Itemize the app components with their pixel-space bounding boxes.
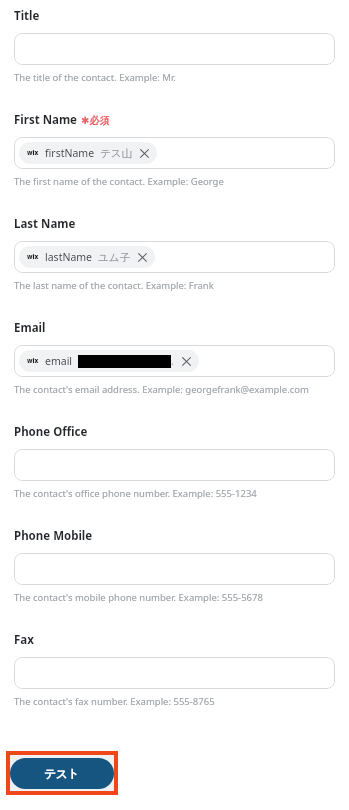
staticText: Fax [14,632,34,648]
button[interactable] [14,657,335,689]
staticText: ✱必須 [81,114,110,127]
staticText: Last Name [14,216,76,232]
staticText: . [171,354,174,368]
staticText: email [45,354,73,368]
staticText: Title [14,8,40,24]
staticText: ユム子 [98,251,130,264]
button[interactable] [14,449,335,481]
other: Remove token [181,356,192,367]
staticText: The first name of the contact. Example: … [14,175,224,188]
other: Remove token [139,148,150,159]
staticText: The contact's email address. Example: ge… [14,383,309,396]
staticText: The title of the contact. Example: Mr. [14,71,176,84]
button[interactable]: テスト [10,758,114,789]
staticText: First Name [14,112,77,128]
staticText: Phone Office [14,424,88,440]
staticText: テスト [44,767,80,781]
button[interactable]: wix [14,241,335,273]
staticText: Email [14,320,46,336]
staticText: テス山 [100,147,132,160]
staticText: The contact's office phone number. Examp… [14,487,257,500]
button[interactable]: wix [19,246,155,268]
staticText: lastName [45,250,93,264]
button[interactable]: wix [19,350,199,372]
staticText: wix [27,357,39,365]
button[interactable]: wix [14,345,335,377]
button[interactable]: wix [14,137,335,169]
staticText: Phone Mobile [14,528,93,544]
other: Remove token [137,252,148,263]
staticText: wix [27,253,39,261]
staticText: The contact's fax number. Example: 555-8… [14,695,215,708]
button[interactable] [14,33,335,65]
button[interactable] [14,553,335,585]
staticText: wix [27,149,39,157]
staticText: The contact's mobile phone number. Examp… [14,591,263,604]
button[interactable]: wix [19,142,157,164]
staticText: The last name of the contact. Example: F… [14,279,214,292]
staticText: firstName [45,146,95,160]
